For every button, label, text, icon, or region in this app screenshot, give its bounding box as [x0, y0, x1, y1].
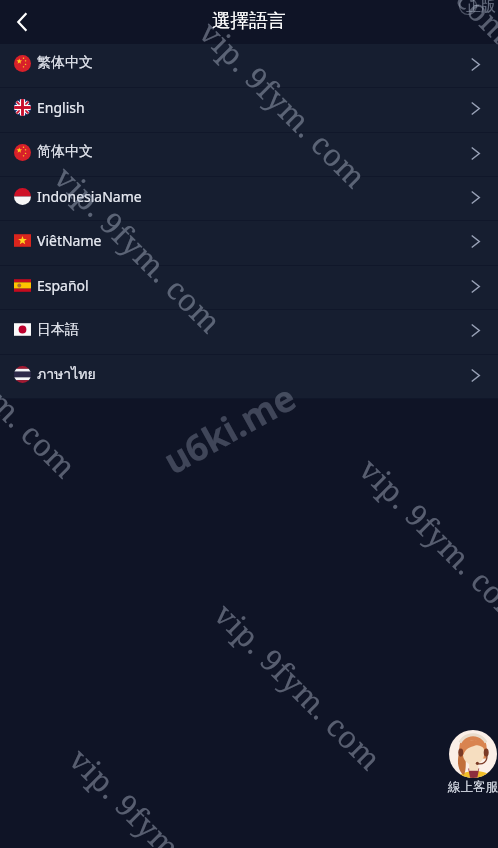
staticText: 日本語 — [37, 321, 79, 339]
button[interactable]: English — [0, 88, 498, 133]
button[interactable]: Español — [0, 266, 498, 310]
staticText: English — [37, 98, 85, 117]
button[interactable]: Back — [0, 0, 44, 43]
staticText: 線上客服 — [448, 779, 498, 795]
staticText: Español — [37, 276, 89, 295]
button[interactable]: ภาษาไทย — [0, 355, 498, 399]
staticText: 選擇語言 — [212, 9, 286, 32]
button[interactable]: Online customer service — [448, 730, 498, 795]
staticText: 繁体中文 — [37, 54, 93, 72]
staticText: IndonesiaName — [37, 187, 142, 206]
button[interactable]: 繁体中文 — [0, 44, 498, 88]
button[interactable]: ViêtName — [0, 221, 498, 266]
button[interactable]: IndonesiaName — [0, 177, 498, 221]
staticText: ViêtName — [37, 231, 102, 250]
staticText: ภาษาไทย — [37, 363, 96, 385]
button[interactable]: 日本語 — [0, 310, 498, 355]
button[interactable]: 简体中文 — [0, 133, 498, 177]
staticText: 简体中文 — [37, 143, 93, 161]
